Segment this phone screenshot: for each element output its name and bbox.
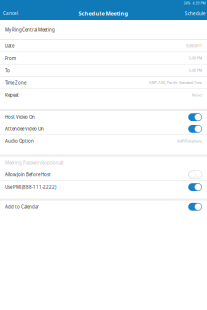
staticText: From: [5, 55, 16, 61]
staticText: Allow Join Before Host: [5, 172, 51, 178]
staticText: Date: [5, 43, 14, 49]
button[interactable]: Cancel: [0, 8, 21, 19]
staticText: Attendee Video On: [5, 126, 44, 132]
staticText: 6:00 PM: [189, 68, 202, 73]
button[interactable]: Schedule: [183, 8, 207, 19]
button[interactable]: To: [0, 65, 207, 76]
button[interactable]: Date: [0, 40, 207, 52]
staticText: Audio Option: [5, 138, 34, 144]
staticText: Never: [192, 93, 202, 97]
staticText: Cancel: [3, 10, 18, 16]
button[interactable]: Repeat: [0, 89, 207, 101]
staticText: 5/28/2017: [186, 43, 202, 48]
button[interactable]: From: [0, 52, 207, 64]
staticText: Time Zone: [5, 80, 26, 86]
staticText: Use PMI (888-111-2222): [5, 184, 56, 190]
staticText: GMT-7:00, Pacific Standard Time: [149, 80, 202, 85]
staticText: Schedule Meeting: [78, 9, 128, 17]
button[interactable]: Meeting Password(optional): [0, 157, 207, 169]
staticText: 34% 4:39 PM: [183, 1, 205, 5]
button[interactable]: Time Zone: [0, 77, 207, 89]
staticText: 5:00 PM: [189, 56, 202, 60]
staticText: Add to Calendar: [5, 204, 39, 210]
staticText: To: [5, 67, 10, 73]
button[interactable]: Host Video On: [0, 111, 207, 123]
staticText: Host Video On: [5, 114, 35, 120]
staticText: Schedule: [185, 10, 206, 16]
button[interactable]: Allow Join Before Host: [0, 169, 207, 181]
button[interactable]: My RingCentral Meeting: [0, 20, 207, 39]
staticText: Repeat: [5, 92, 19, 98]
button[interactable]: Add to Calendar: [0, 201, 207, 213]
staticText: Meeting Password(optional): [5, 160, 63, 166]
staticText: My RingCentral Meeting: [5, 27, 55, 33]
staticText: VoIP/Telephone: [177, 139, 202, 143]
button[interactable]: Audio Option: [0, 135, 207, 147]
button[interactable]: Use PMI (888-111-2222): [0, 181, 207, 193]
button[interactable]: Attendee Video On: [0, 123, 207, 135]
